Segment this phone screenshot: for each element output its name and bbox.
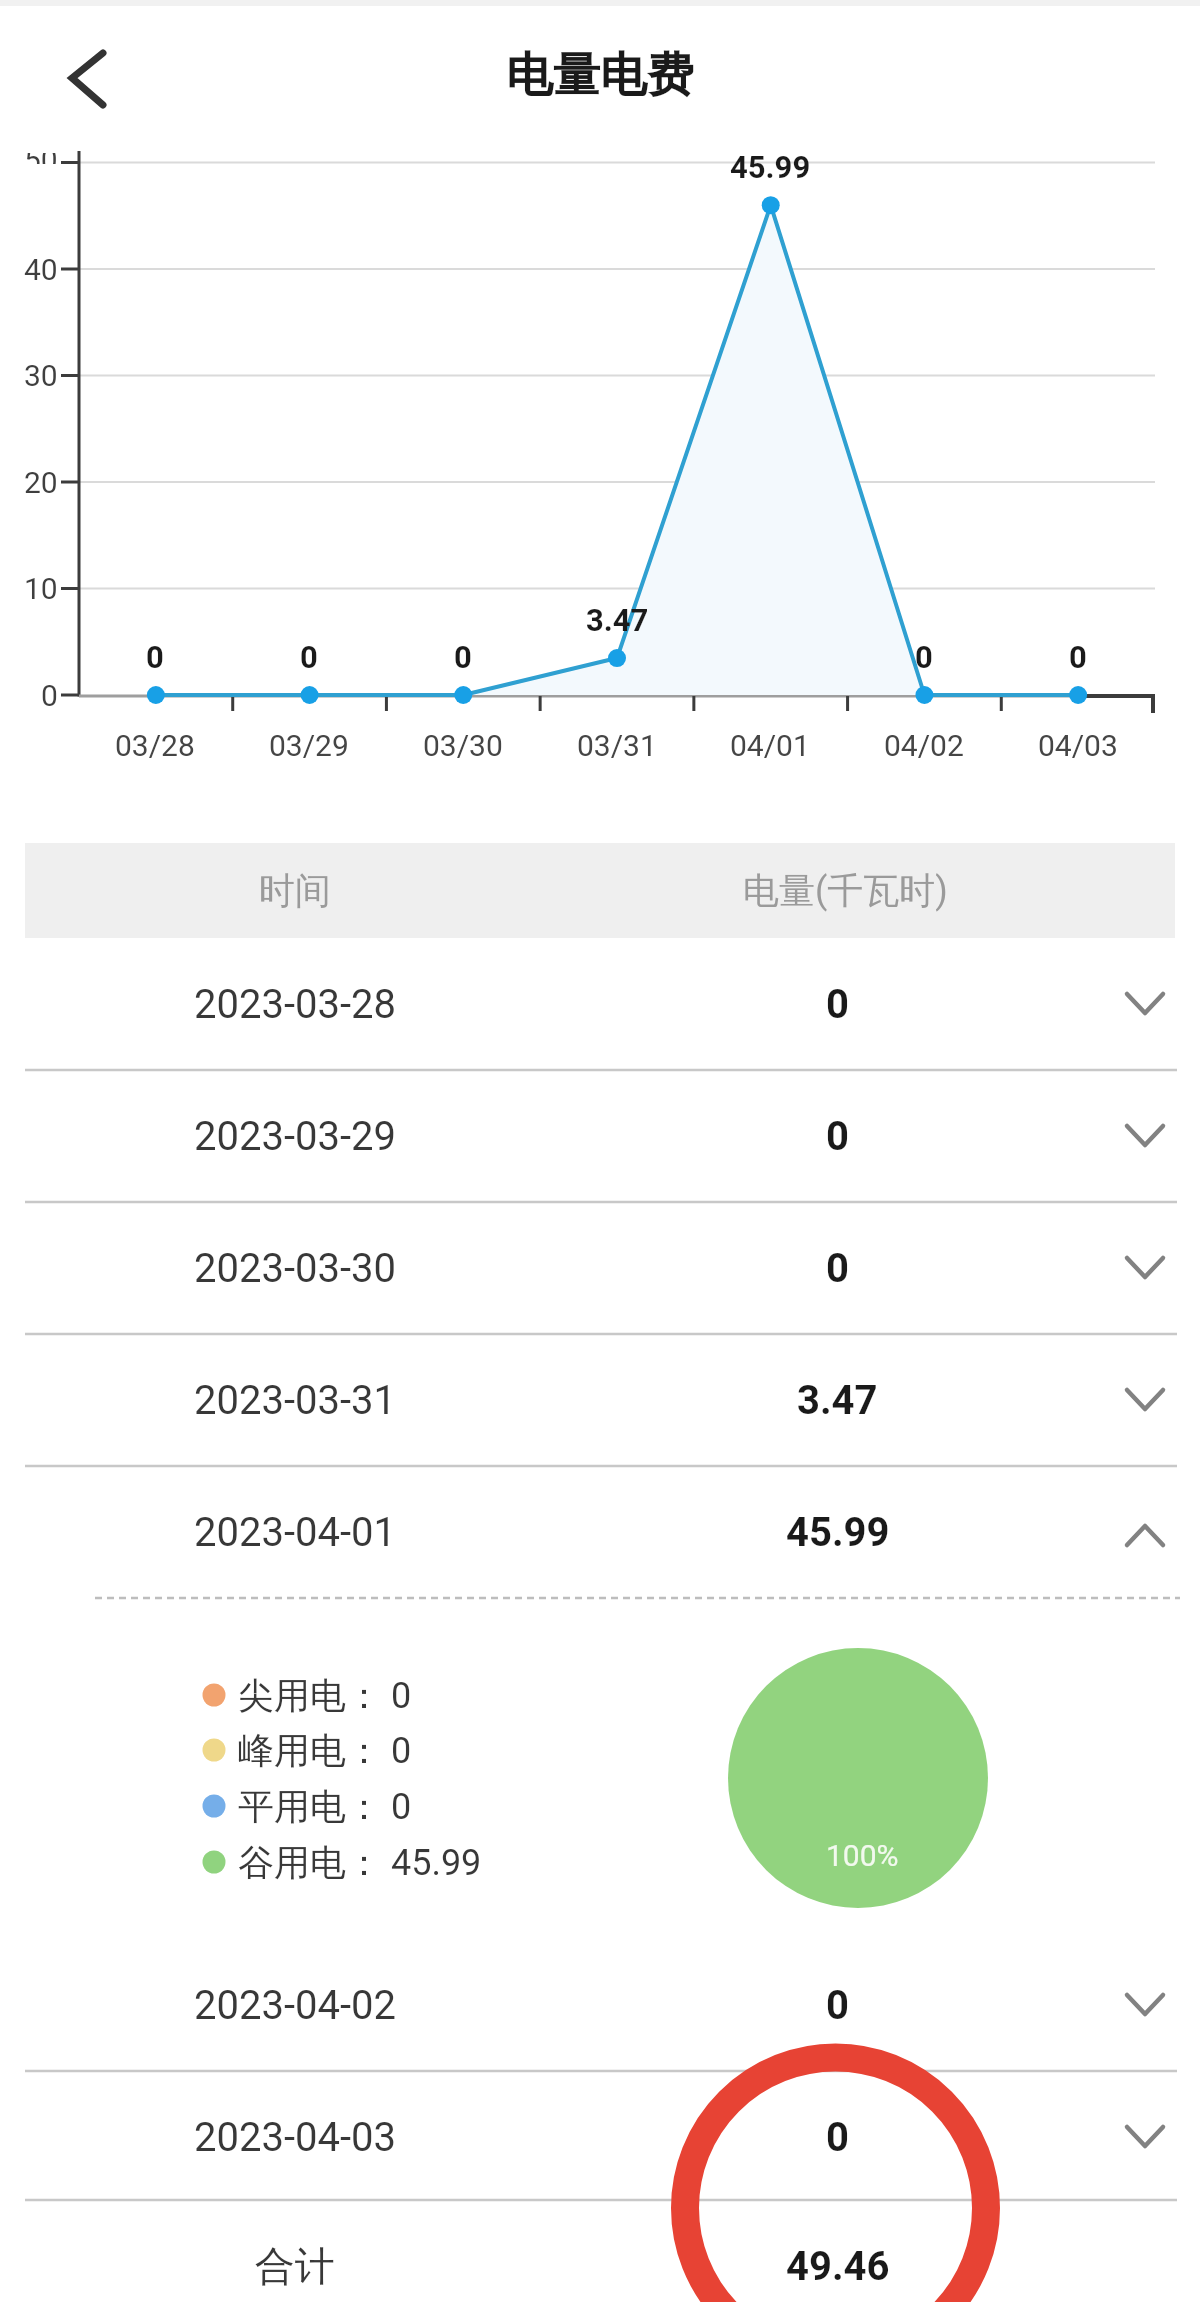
staticText: 30 — [24, 358, 58, 393]
staticText: 尖用电： 0 — [238, 1673, 412, 1718]
staticText: 合计 — [255, 2241, 335, 2291]
staticText: 2023-03-28 — [194, 981, 396, 1028]
staticText: 2023-04-03 — [194, 2114, 396, 2161]
button[interactable]: 2023-03-31 — [25, 1334, 1175, 1466]
staticText: 45.99 — [730, 149, 811, 185]
button[interactable] — [45, 30, 135, 125]
button[interactable]: 2023-03-29 — [25, 1070, 1175, 1202]
button[interactable]: 2023-04-03 — [25, 2071, 1175, 2203]
staticText: 平用电： 0 — [238, 1784, 412, 1829]
staticText: 时间 — [259, 868, 331, 913]
staticText: 谷用电： 45.99 — [238, 1840, 482, 1885]
staticText: 3.47 — [797, 1377, 878, 1424]
staticText: 04/02 — [884, 728, 964, 763]
staticText: 0 — [41, 678, 58, 713]
button[interactable]: 2023-04-02 — [25, 1939, 1175, 2071]
staticText: 0 — [1069, 639, 1087, 675]
staticText: 2023-03-30 — [194, 1245, 396, 1292]
button[interactable]: 2023-03-30 — [25, 1202, 1175, 1334]
staticText: 45.99 — [786, 1509, 890, 1556]
staticText: 40 — [24, 252, 58, 287]
staticText: 3.47 — [586, 602, 649, 638]
staticText: 10 — [24, 571, 58, 606]
staticText: 50 — [24, 153, 58, 164]
staticText: 04/01 — [730, 728, 810, 763]
staticText: 03/29 — [269, 728, 349, 763]
staticText: 20 — [24, 465, 58, 500]
staticText: 03/31 — [577, 728, 657, 763]
staticText: 0 — [146, 639, 164, 675]
staticText: 49.46 — [786, 2243, 890, 2290]
staticText: 0 — [826, 2114, 849, 2161]
staticText: 0 — [454, 639, 472, 675]
staticText: 2023-03-29 — [194, 1113, 396, 1160]
staticText: 0 — [300, 639, 318, 675]
staticText: 电量电费 — [506, 46, 694, 105]
staticText: 0 — [826, 1982, 849, 2029]
staticText: 03/30 — [423, 728, 503, 763]
staticText: 03/28 — [115, 728, 195, 763]
button[interactable]: 2023-04-01 — [25, 1466, 1175, 1598]
staticText: 2023-04-02 — [194, 1982, 396, 2029]
staticText: 0 — [915, 639, 933, 675]
staticText: 峰用电： 0 — [238, 1728, 412, 1773]
staticText: 2023-04-01 — [194, 1509, 396, 1556]
staticText: 0 — [826, 1245, 849, 1292]
staticText: 0 — [826, 1113, 849, 1160]
staticText: 100% — [826, 1838, 899, 1873]
staticText: 0 — [826, 981, 849, 1028]
staticText: 2023-03-31 — [194, 1377, 396, 1424]
staticText: 04/03 — [1038, 728, 1118, 763]
button[interactable]: 2023-03-28 — [25, 938, 1175, 1070]
staticText: 电量(千瓦时) — [743, 868, 948, 913]
